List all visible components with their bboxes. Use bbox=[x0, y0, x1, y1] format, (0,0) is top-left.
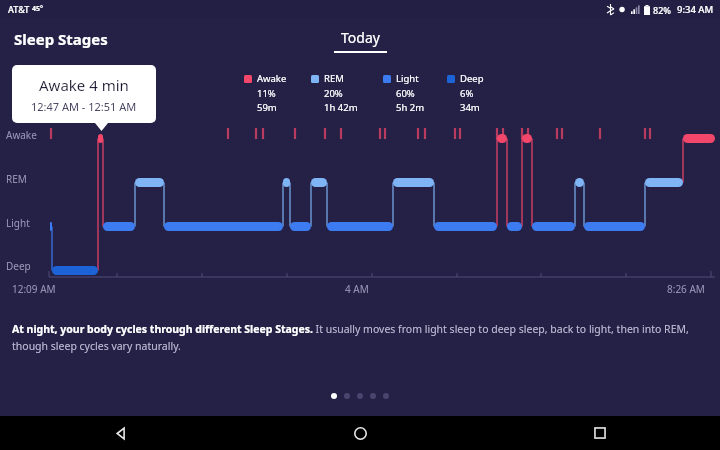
staticText: Today bbox=[341, 28, 380, 47]
staticText: 8:26 AM bbox=[667, 282, 705, 296]
button[interactable]: Home bbox=[240, 416, 480, 450]
staticText: 20% bbox=[324, 87, 343, 100]
button[interactable]: Recent apps bbox=[480, 416, 720, 450]
staticText: 1h 42m bbox=[324, 101, 358, 114]
staticText: Awake 4 min bbox=[39, 75, 129, 95]
staticText: 60% bbox=[396, 87, 415, 100]
staticText: Deep bbox=[6, 259, 31, 273]
staticText: Awake bbox=[6, 128, 37, 142]
staticText: 9:34 AM bbox=[677, 3, 714, 16]
staticText: 12:47 AM - 12:51 AM bbox=[31, 99, 137, 114]
staticText: AT&T bbox=[8, 3, 30, 15]
staticText: Awake bbox=[257, 72, 287, 85]
staticText: REM bbox=[6, 172, 27, 186]
staticText: 45° bbox=[32, 4, 43, 14]
button[interactable]: Back bbox=[0, 416, 240, 450]
staticText: 59m bbox=[257, 101, 277, 114]
staticText: Deep bbox=[460, 72, 484, 85]
button[interactable]: Awake 4 min bbox=[12, 65, 156, 123]
staticText: 12:09 AM bbox=[12, 282, 56, 296]
staticText: 34m bbox=[460, 101, 480, 114]
staticText: 4 AM bbox=[345, 282, 369, 296]
staticText: 82% bbox=[653, 4, 671, 16]
staticText: At night, your body cycles through diffe… bbox=[12, 322, 708, 353]
staticText: Sleep Stages bbox=[14, 29, 108, 49]
staticText: Light bbox=[396, 72, 419, 85]
staticText: Light bbox=[6, 216, 30, 230]
staticText: 5h 2m bbox=[396, 101, 425, 114]
staticText: REM bbox=[324, 72, 344, 85]
button[interactable]: Today bbox=[334, 28, 387, 53]
staticText: 11% bbox=[257, 87, 276, 100]
staticText: 6% bbox=[460, 87, 474, 100]
